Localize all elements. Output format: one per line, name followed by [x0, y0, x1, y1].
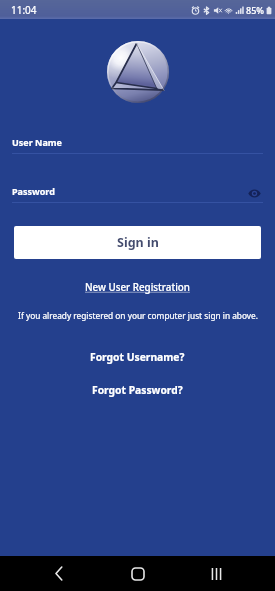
button[interactable]: Forgot Username? — [80, 347, 195, 367]
button[interactable]: Show password — [245, 184, 263, 202]
staticText: Sign in — [117, 234, 159, 251]
button[interactable]: Recent apps — [196, 556, 236, 591]
staticText: Password — [12, 185, 55, 197]
button[interactable]: Sign in — [14, 226, 261, 259]
button[interactable]: Home — [118, 556, 158, 591]
button[interactable]: Forgot Password? — [82, 380, 193, 400]
staticText: 85% — [246, 4, 264, 16]
button[interactable]: New User Registration — [75, 278, 200, 297]
staticText: User Name — [12, 136, 62, 148]
staticText: If you already registered on your comput… — [18, 310, 258, 321]
staticText: 11:04 — [11, 3, 37, 17]
button[interactable]: Back — [39, 556, 79, 591]
